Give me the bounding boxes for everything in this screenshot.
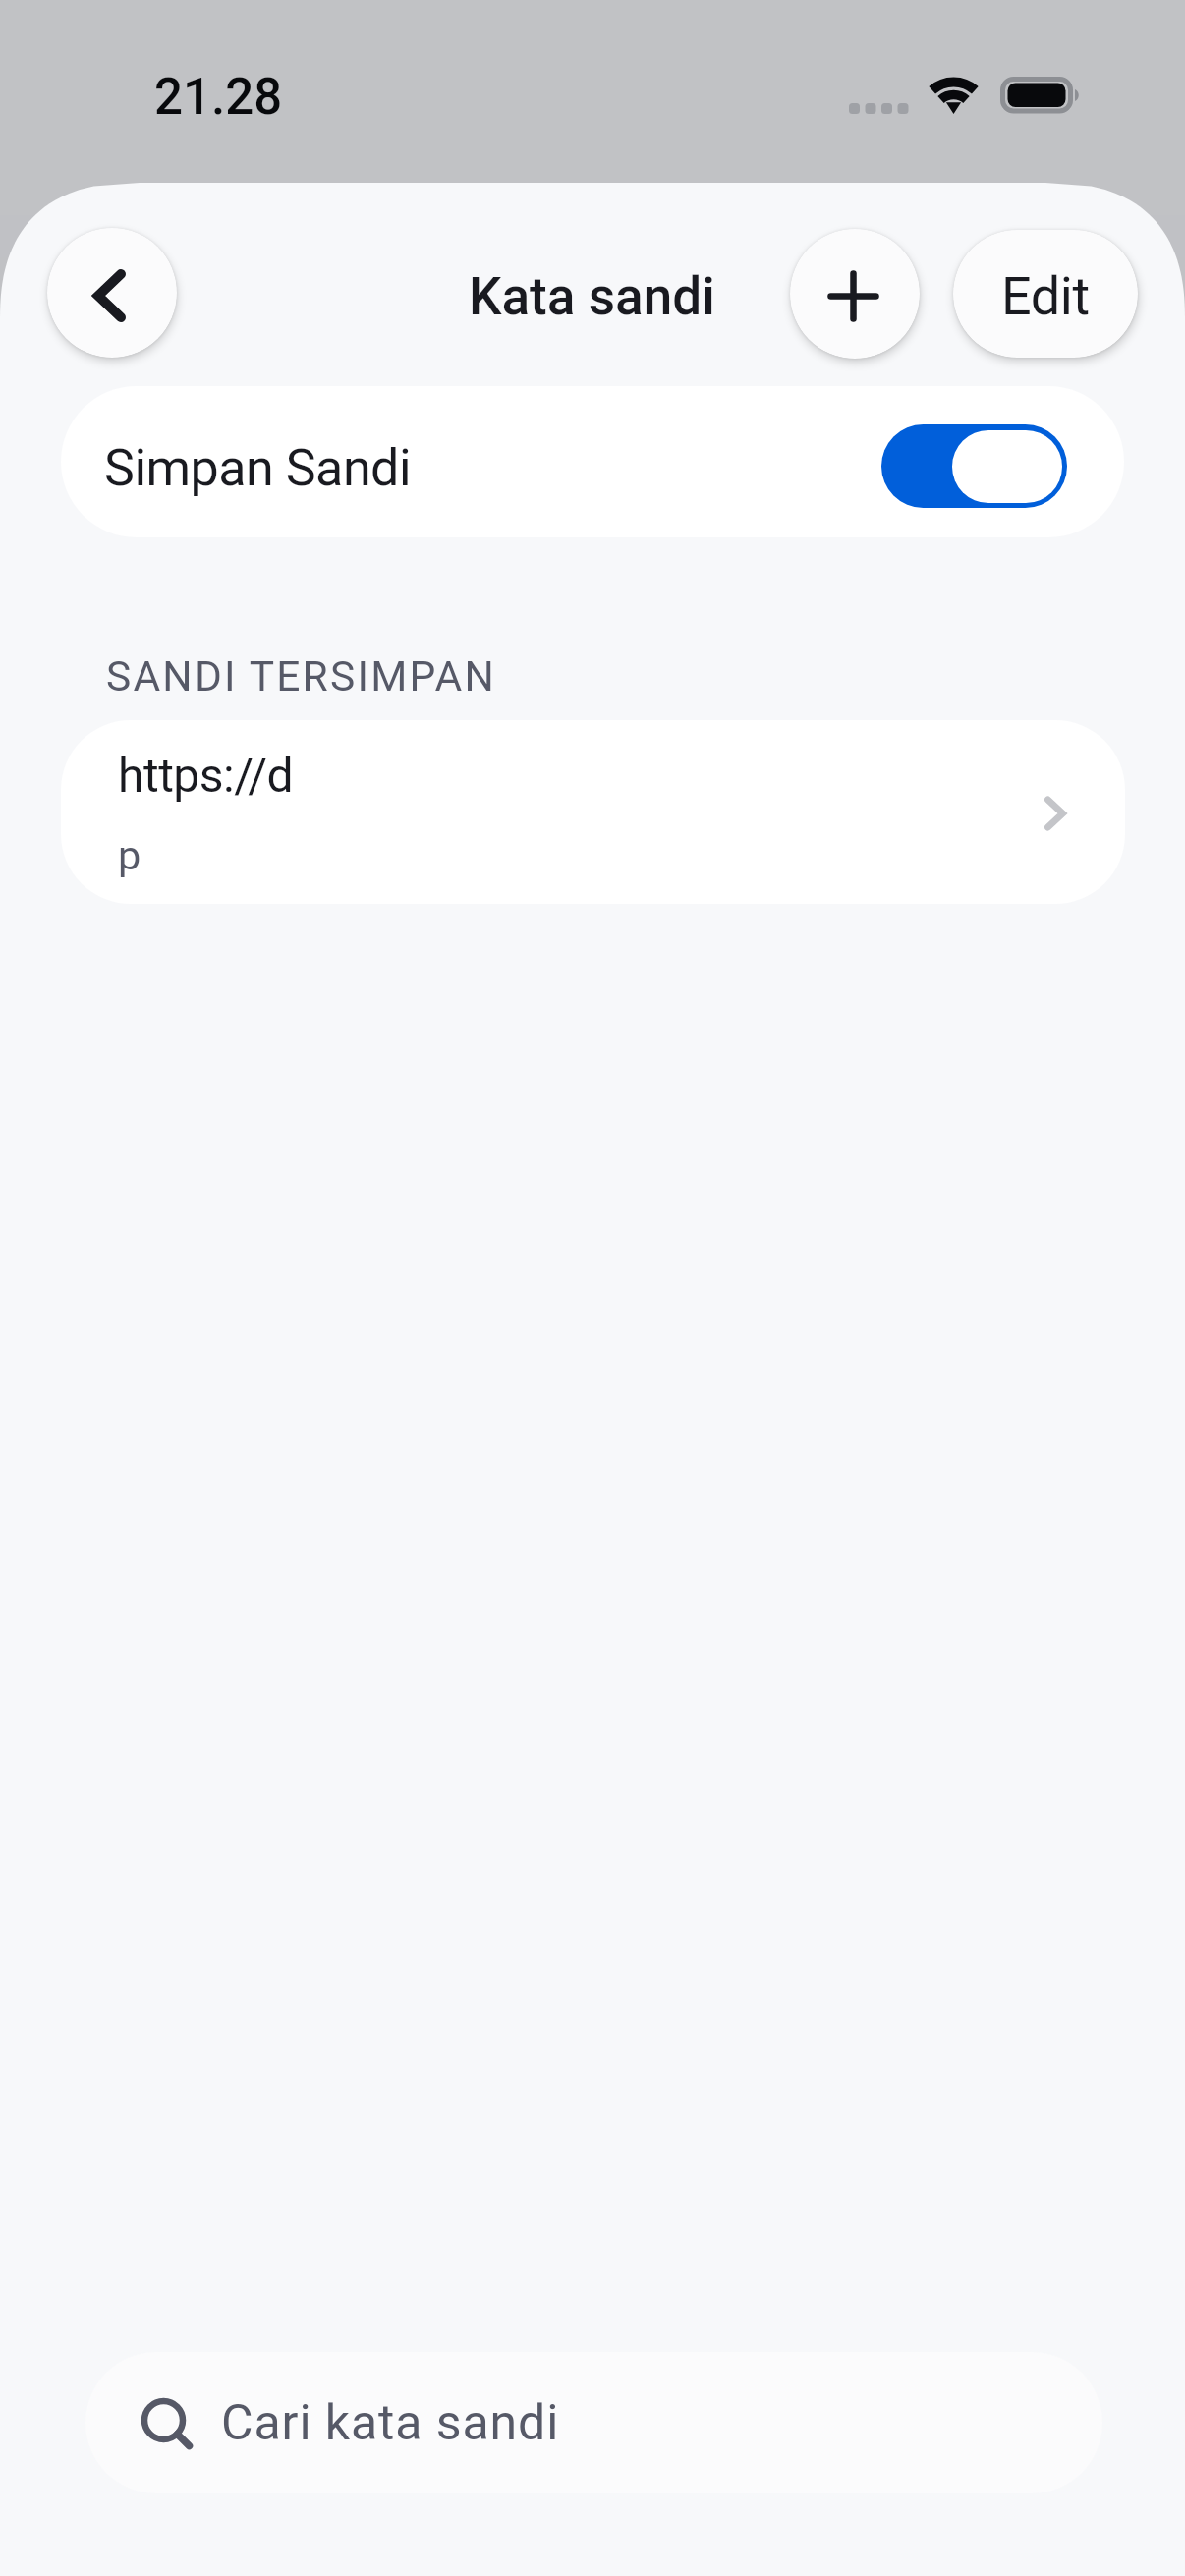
staticText: 21.28 (154, 68, 283, 127)
staticText: SANDI TERSIMPAN (106, 652, 497, 701)
button[interactable]: Cari kata sandi (85, 2352, 1102, 2493)
button[interactable]: Add password (790, 229, 920, 359)
button[interactable]: Edit (953, 230, 1138, 358)
staticText: Cari kata sandi (221, 2394, 560, 2452)
staticText: https://d (118, 748, 294, 803)
staticText: p (118, 831, 140, 879)
button[interactable]: https://d (61, 720, 1125, 904)
staticText: Simpan Sandi (104, 438, 412, 498)
staticText: Kata sandi (469, 266, 715, 327)
staticText: Edit (1001, 265, 1090, 327)
button[interactable]: Simpan Sandi (61, 386, 1124, 537)
button[interactable]: Simpan Sandi toggle (881, 424, 1067, 508)
button[interactable]: Back (47, 228, 177, 358)
